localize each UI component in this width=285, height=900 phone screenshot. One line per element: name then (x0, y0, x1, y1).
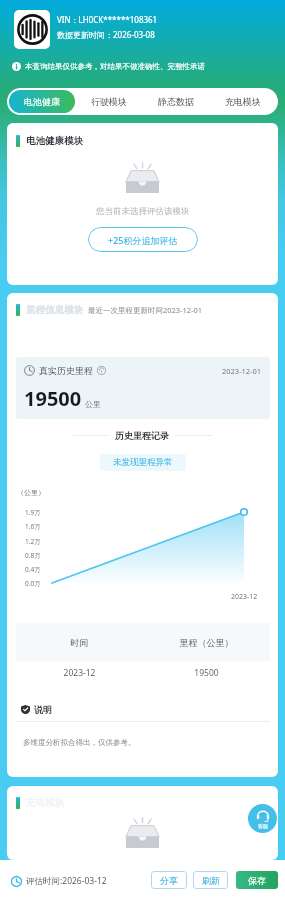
staticText: 说明 (34, 704, 52, 715)
staticText: 客服 (258, 823, 268, 829)
staticText: 19500 (143, 667, 270, 679)
button[interactable]: 电池健康 (9, 90, 75, 113)
staticText: 里程（公里） (143, 637, 270, 648)
staticText: 充电模块 (26, 797, 64, 809)
staticText: 电池健康 (24, 96, 60, 107)
staticText: 未发现里程异常 (113, 457, 173, 468)
staticText: 刷新 (202, 875, 220, 886)
staticText: +25积分追加评估 (108, 234, 178, 246)
staticText: 评估时间:2026-03-12 (26, 875, 107, 887)
button[interactable]: 刷新 (193, 871, 228, 889)
staticText: 最近一次里程更新时间2023-12-01 (88, 305, 203, 315)
staticText: 0.0万 (25, 579, 41, 588)
staticText: 多维度分析拟合得出，仅供参考。 (23, 738, 136, 747)
staticText: 里程信息模块 (26, 304, 83, 316)
staticText: 电池健康模块 (26, 135, 83, 147)
staticText: 行驶模块 (91, 96, 127, 107)
staticText: 历史里程记录 (115, 430, 169, 441)
button[interactable]: 保存 (236, 871, 278, 889)
staticText: 0.8万 (25, 551, 41, 560)
staticText: 真实历史里程 (39, 365, 93, 376)
button[interactable]: 充电模块 (209, 90, 276, 113)
staticText: 本查询结果仅供参考，对结果不做准确性、完整性承诺 (25, 62, 205, 71)
staticText: VIN：LH0CK******108361 (57, 14, 158, 25)
staticText: 2023-12-01 (222, 366, 262, 376)
staticText: 1.9万 (25, 508, 41, 517)
staticText: 2023-12 (231, 592, 258, 602)
staticText: 1.6万 (25, 522, 41, 531)
staticText: 分享 (160, 875, 178, 886)
button[interactable]: 行驶模块 (75, 90, 142, 113)
staticText: 公里 (85, 399, 101, 409)
button[interactable]: 静态数据 (142, 90, 209, 113)
staticText: 数据更新时间：2026-03-08 (57, 29, 155, 40)
button[interactable]: 分享 (151, 871, 187, 889)
staticText: 您当前未选择评估该模块 (96, 206, 190, 217)
staticText: （公里） (17, 488, 45, 497)
staticText: 保存 (248, 875, 266, 886)
button[interactable]: +25积分追加评估 (88, 227, 198, 252)
staticText: 19500 (24, 385, 82, 412)
staticText: 1.2万 (25, 537, 41, 546)
staticText: 时间 (16, 637, 143, 648)
staticText: 静态数据 (158, 96, 194, 107)
button[interactable]: 客服 (248, 804, 277, 833)
staticText: 充电模块 (225, 96, 261, 107)
staticText: 2023-12 (16, 667, 143, 679)
staticText: 0.4万 (25, 565, 41, 574)
